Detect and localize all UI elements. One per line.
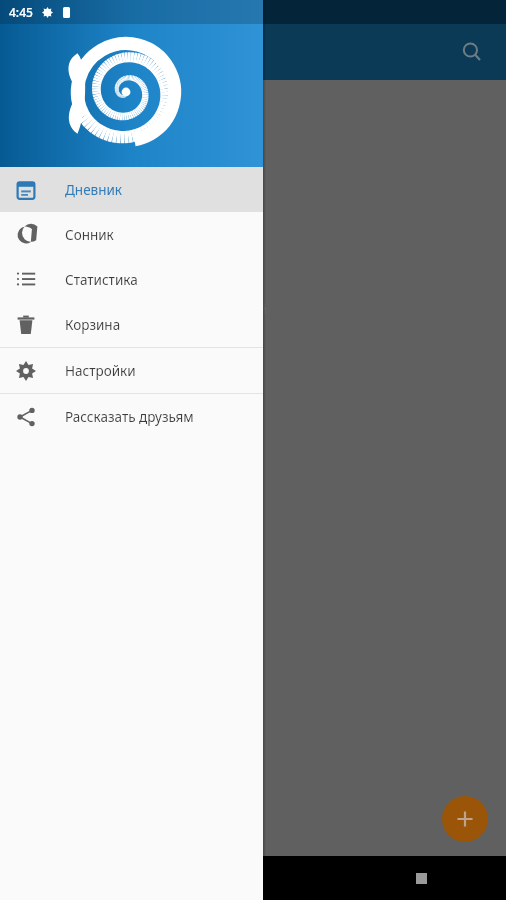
button[interactable]: Дневник [0,167,263,212]
staticText: Настройки [65,362,136,380]
button[interactable]: Search [448,28,496,76]
button[interactable]: Recent apps [337,856,506,900]
button[interactable]: Статистика [0,257,263,302]
staticText: 4:45 [9,4,33,20]
button[interactable]: Настройки [0,348,263,393]
staticText: Сонник [65,226,114,244]
button[interactable]: Add entry [442,796,488,842]
staticText: Корзина [65,316,121,334]
staticText: Рассказать друзьям [65,408,194,426]
staticText: Дневник [65,181,123,199]
staticText: Статистика [65,271,138,289]
button[interactable]: Сонник [0,212,263,257]
staticText: Нет записей [190,300,268,318]
button[interactable]: Корзина [0,302,263,347]
button[interactable]: Рассказать друзьям [0,394,263,439]
button[interactable]: Home [168,856,337,900]
